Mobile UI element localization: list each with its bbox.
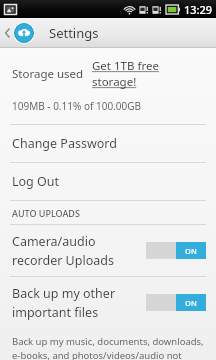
staticText: 109MB - 0.11% of 100.00GB [12,99,142,113]
staticText: recorder Uploads [12,252,114,269]
button[interactable]: Camera/audio [0,225,216,276]
button[interactable]: Back up my other [0,277,216,328]
button[interactable]: Toggle on [146,294,206,311]
staticText: Storage used [12,66,84,82]
staticText: 13:29 [184,2,213,17]
staticText: important files [12,304,99,321]
button[interactable]: Storage used [0,56,216,92]
staticText: Camera/audio [12,233,96,250]
staticText: AUTO UPLOADS [12,207,80,219]
button[interactable]: Log Out [0,163,216,200]
staticText: e-books, and photos/videos/audio not [12,349,182,360]
button[interactable]: Back [0,18,216,48]
staticText: ON [185,298,197,308]
staticText: Back up my music, documents, downloads, [12,335,204,348]
staticText: Settings [49,24,99,42]
button[interactable]: Change Password [0,125,216,162]
staticText: Change Password [12,135,117,152]
staticText: Get 1TB free storage! [92,58,204,90]
staticText: Back up my other [12,285,116,302]
staticText: ON [185,246,197,256]
staticText: Log Out [12,173,60,190]
button[interactable]: Toggle on [146,242,206,259]
